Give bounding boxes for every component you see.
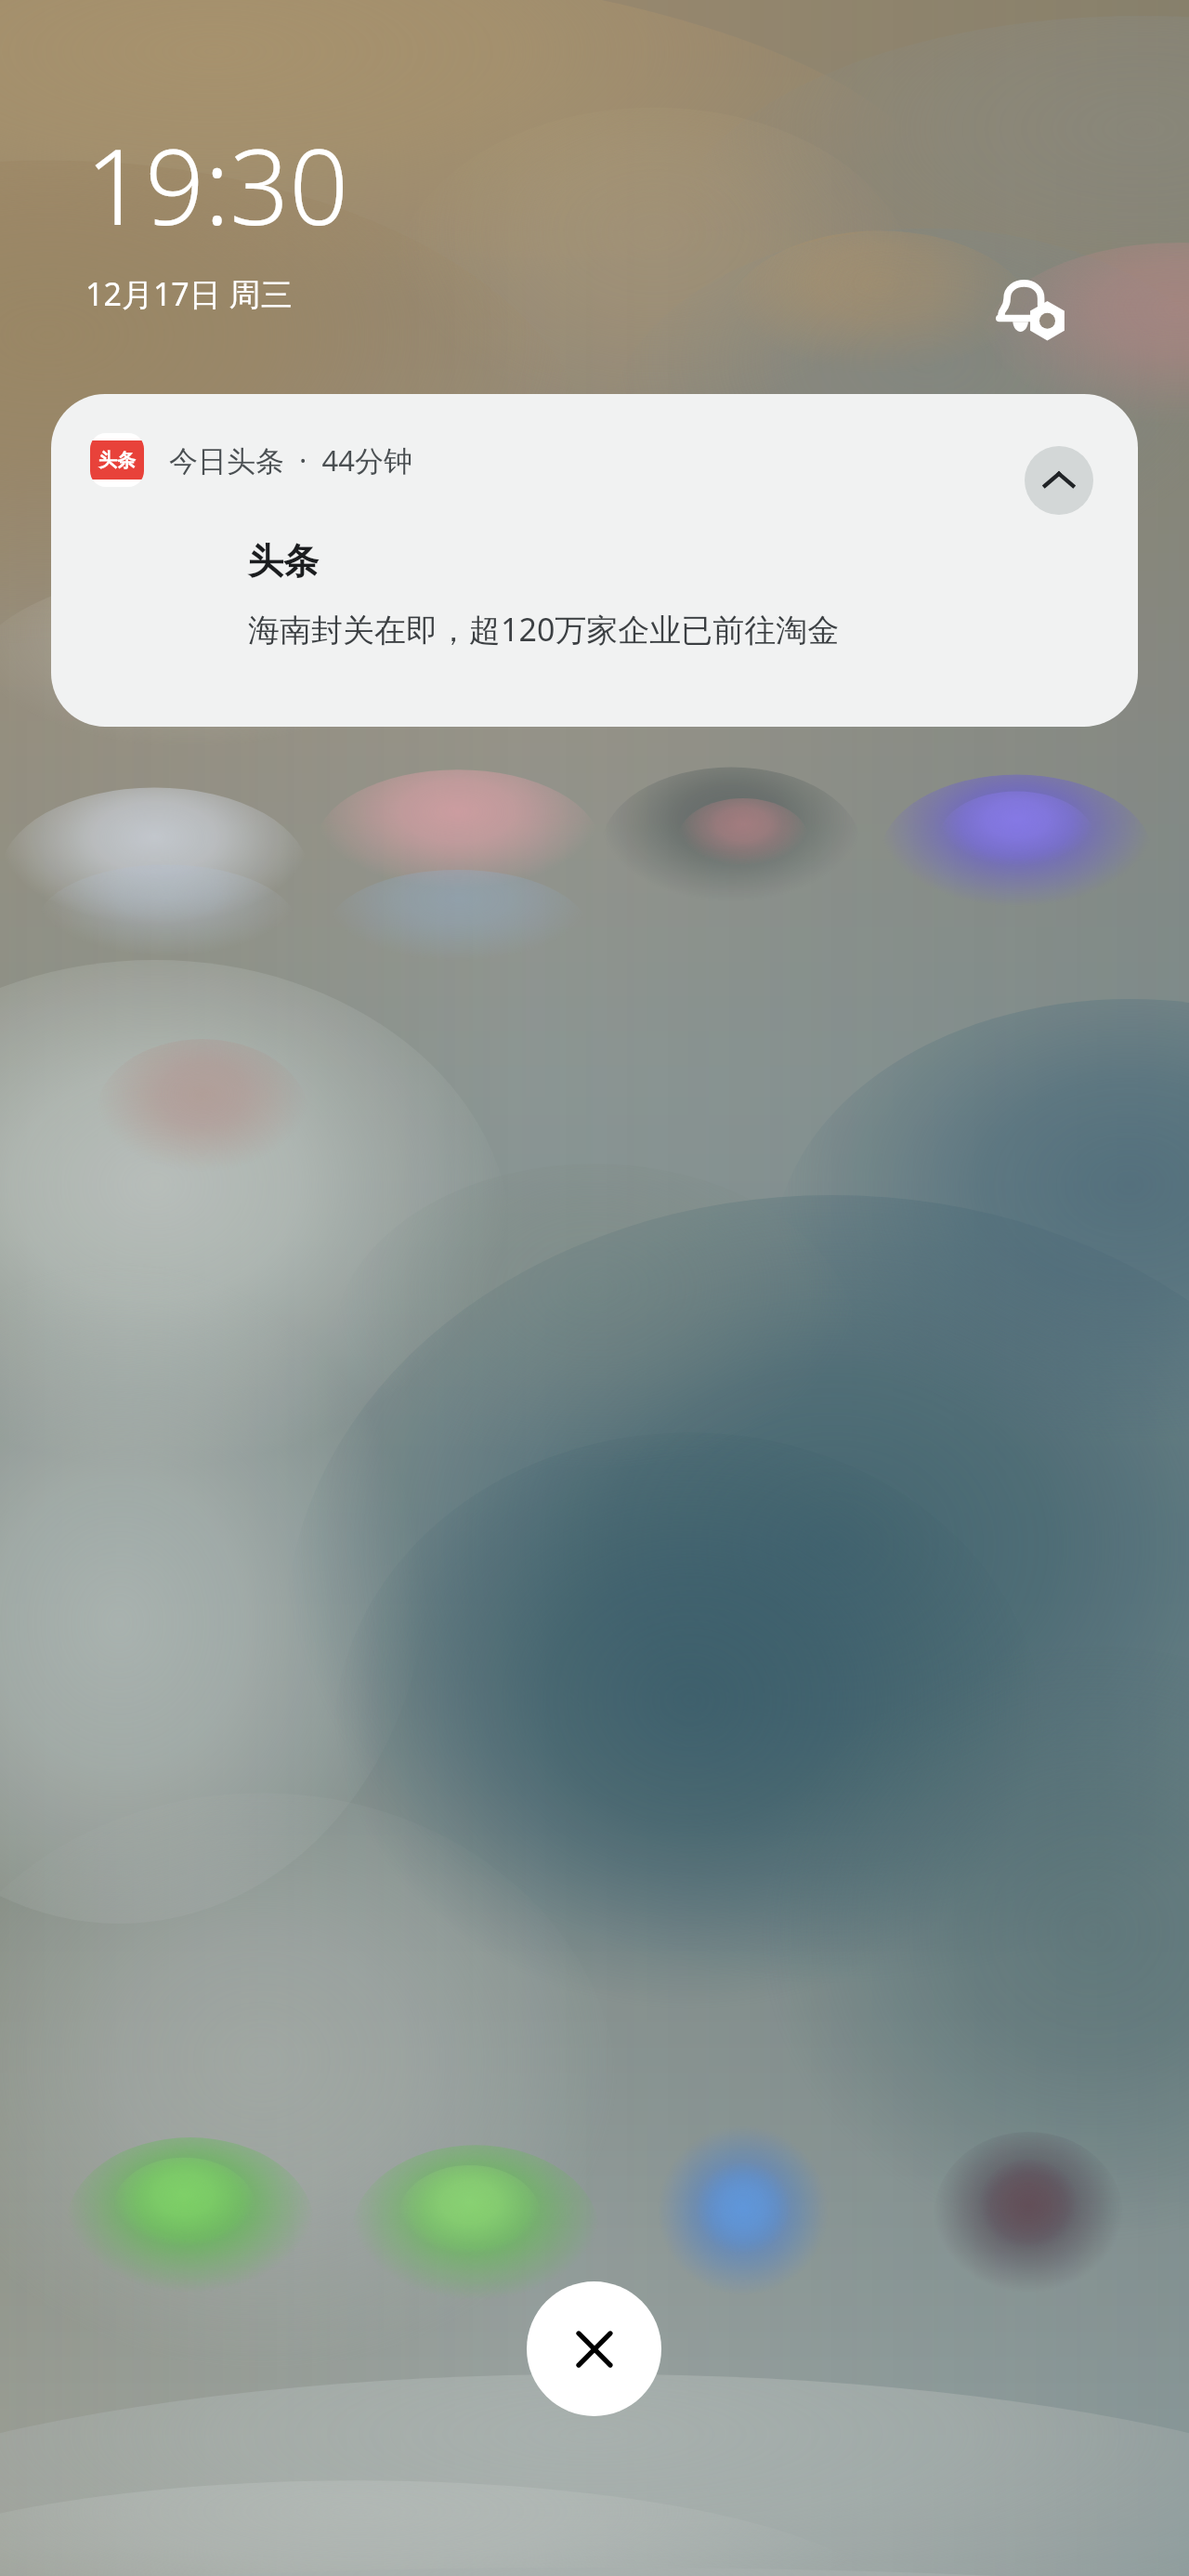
staticText: 海南封关在即，超120万家企业已前往淘金 [248, 608, 840, 651]
staticText: 头条 [98, 449, 136, 472]
button[interactable]: Notification settings [981, 256, 1081, 357]
staticText: 12月17日 周三 [85, 272, 293, 315]
button[interactable]: Collapse notification [1025, 446, 1093, 515]
staticText: 头条 [248, 539, 319, 584]
button[interactable]: 头条 [51, 394, 1138, 727]
staticText: 今日头条 · 44分钟 [169, 440, 413, 480]
staticText: 19:30 [85, 113, 349, 256]
button[interactable]: Close [527, 2281, 661, 2416]
